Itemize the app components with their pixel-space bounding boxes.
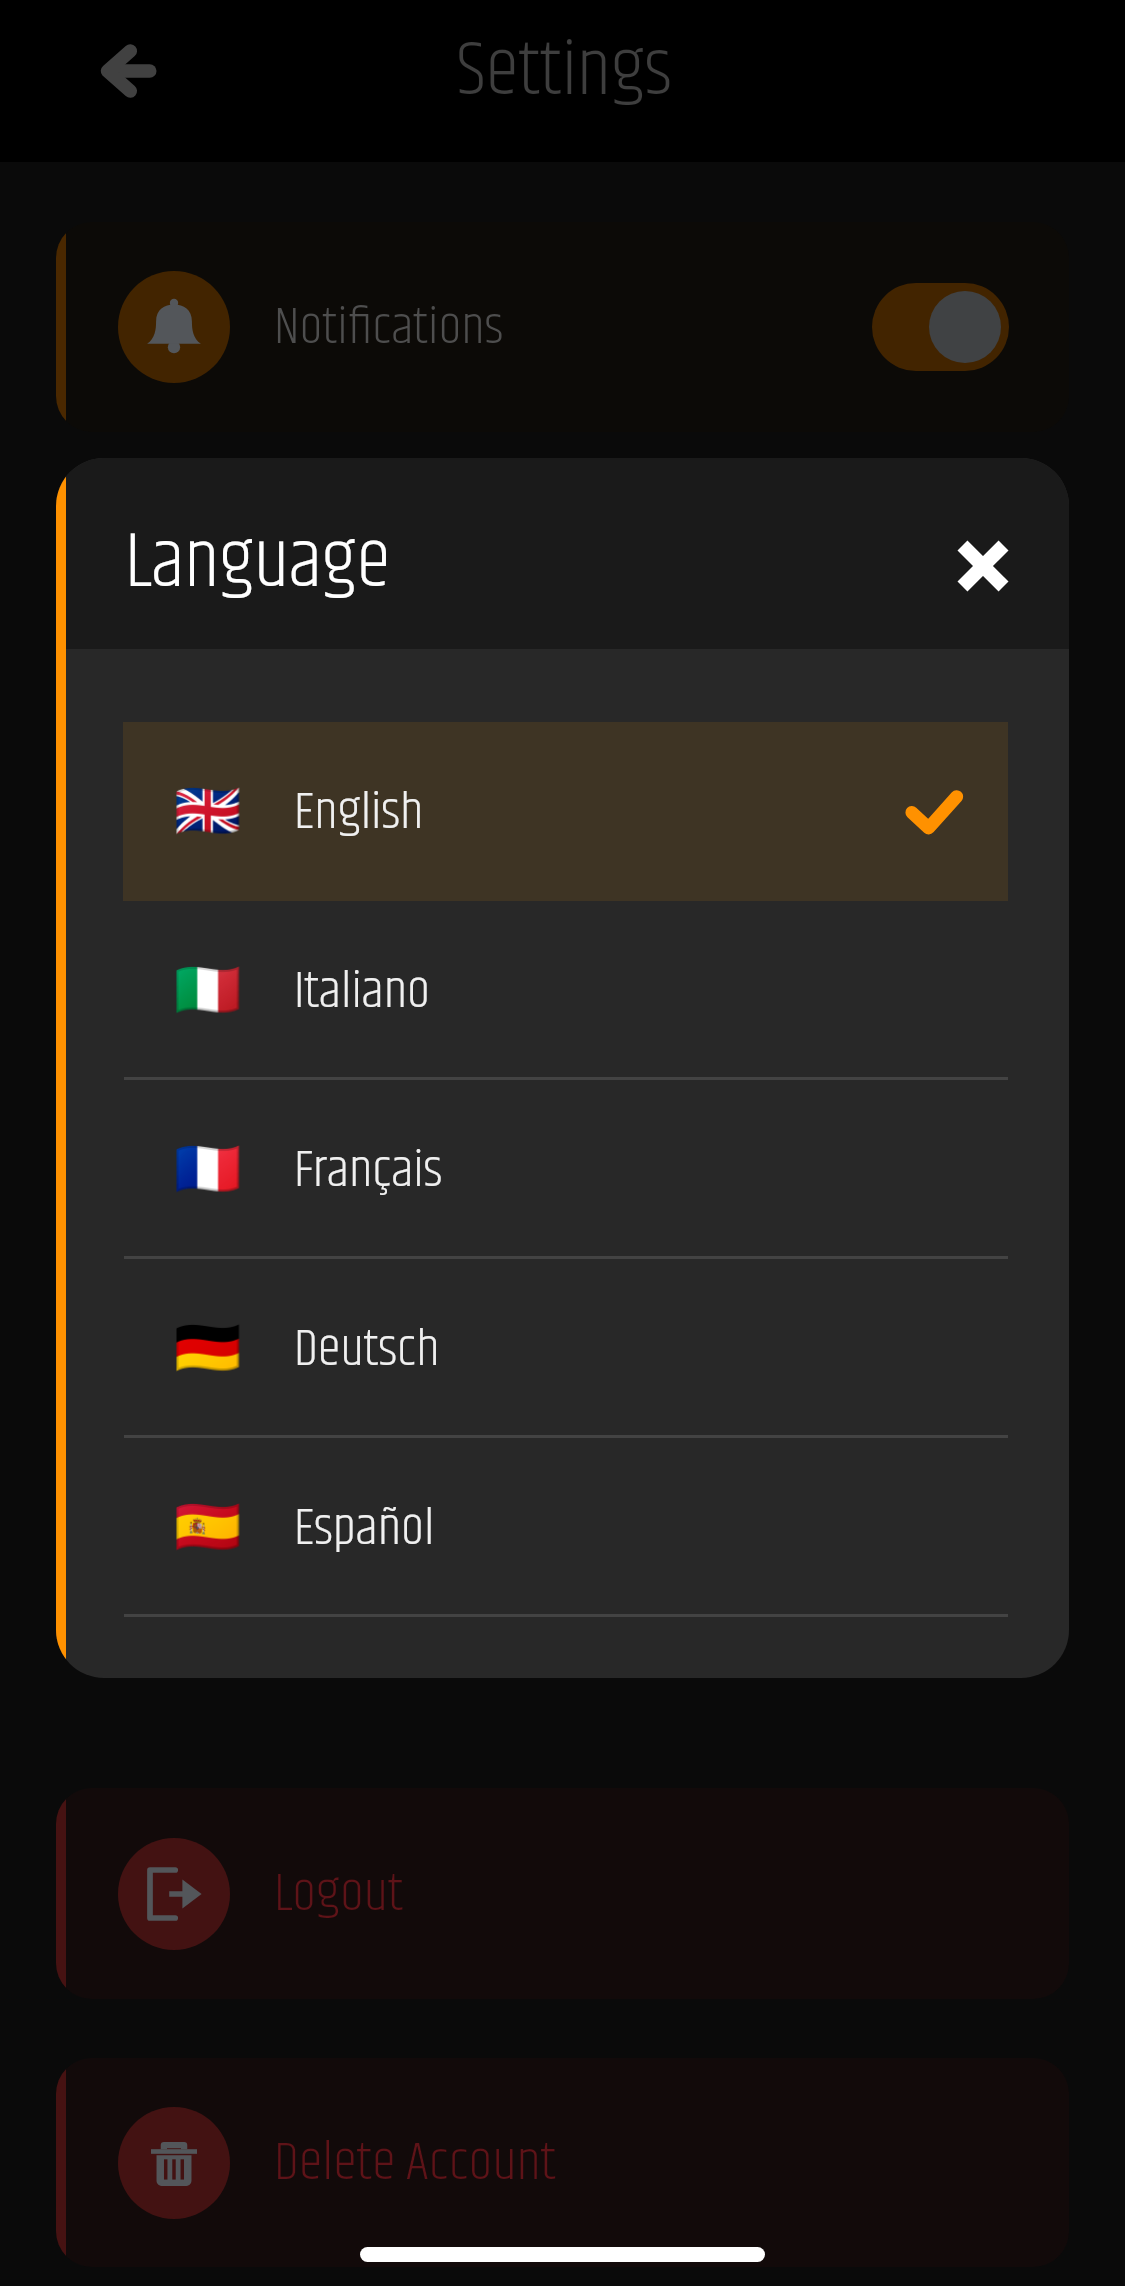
button[interactable]: 🇩🇪 [56,1259,1069,1438]
staticText: 🇩🇪 [174,1316,242,1379]
staticText: Français [294,1131,443,1211]
button[interactable]: Logout [56,1788,1069,1999]
staticText: Notifications [274,288,504,368]
button[interactable]: 🇮🇹 [56,901,1069,1080]
button[interactable]: Delete Account [56,2058,1069,2267]
staticText: 🇪🇸 [174,1495,242,1558]
staticText: Delete Account [274,2122,557,2205]
staticText: Settings [457,14,672,130]
button[interactable]: Close [933,516,1033,616]
staticText: English [294,773,424,853]
button[interactable]: 🇬🇧 [56,722,1069,901]
button[interactable]: Notifications [56,222,1069,432]
staticText: 🇮🇹 [174,958,242,1021]
staticText: Logout [274,1853,404,1936]
staticText: Language [125,504,391,623]
staticText: Deutsch [294,1310,440,1390]
button[interactable]: Back [78,22,176,120]
button[interactable]: Notifications toggle [872,283,1009,371]
staticText: 🇫🇷 [174,1137,242,1200]
button[interactable]: 🇫🇷 [56,1080,1069,1259]
button[interactable]: 🇪🇸 [56,1438,1069,1617]
staticText: 🇬🇧 [174,779,242,842]
staticText: Español [294,1489,435,1569]
staticText: Italiano [294,952,430,1032]
